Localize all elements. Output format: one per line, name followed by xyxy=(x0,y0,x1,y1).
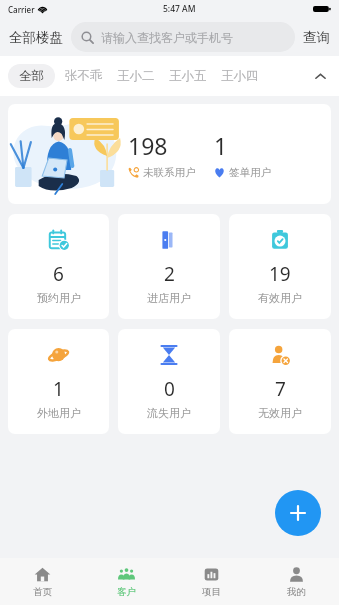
staticText: 王小四 xyxy=(221,68,259,84)
staticText: 198 xyxy=(128,130,168,161)
button[interactable]: 张不乖 xyxy=(61,64,107,88)
staticText: 请输入查找客户或手机号 xyxy=(101,30,233,45)
button[interactable]: 19 xyxy=(229,214,331,319)
staticText: 1 xyxy=(214,130,228,161)
button[interactable]: 6 xyxy=(8,214,109,319)
staticText: 无效用户 xyxy=(258,406,302,420)
button[interactable]: 7 xyxy=(229,329,331,434)
staticText: 我的 xyxy=(287,586,306,598)
staticText: 首页 xyxy=(33,586,52,598)
staticText: 项目 xyxy=(202,586,221,598)
button[interactable]: 我的 xyxy=(254,558,339,605)
button[interactable]: 王小五 xyxy=(165,64,211,88)
staticText: 全部 xyxy=(19,68,44,84)
button[interactable]: Collapse tabs xyxy=(307,63,333,89)
staticText: 签单用户 xyxy=(229,166,271,179)
staticText: 5:47 AM xyxy=(163,3,196,15)
button[interactable]: Add customer xyxy=(275,490,321,536)
button[interactable]: 首页 xyxy=(0,558,84,605)
staticText: Carrier xyxy=(8,4,35,15)
button[interactable]: 0 xyxy=(118,329,220,434)
staticText: 1 xyxy=(53,376,64,402)
staticText: 预约用户 xyxy=(37,291,81,305)
staticText: 王小五 xyxy=(169,68,207,84)
staticText: 客户 xyxy=(117,586,136,598)
staticText: 0 xyxy=(164,376,175,402)
staticText: 外地用户 xyxy=(37,406,81,420)
staticText: 查询 xyxy=(303,29,330,46)
button[interactable]: 查询 xyxy=(302,25,331,50)
button[interactable]: 王小四 xyxy=(217,64,263,88)
staticText: 7 xyxy=(275,376,286,402)
staticText: 王小二 xyxy=(117,68,155,84)
staticText: 有效用户 xyxy=(258,291,302,305)
button[interactable]: 2 xyxy=(118,214,220,319)
staticText: 6 xyxy=(53,261,64,287)
staticText: 张不乖 xyxy=(65,68,103,84)
staticText: 19 xyxy=(269,261,291,287)
button[interactable]: 全部楼盘 xyxy=(8,25,64,50)
staticText: 进店用户 xyxy=(147,291,191,305)
button[interactable]: 198 xyxy=(8,104,331,204)
button[interactable]: 请输入查找客户或手机号 xyxy=(71,22,295,52)
staticText: 未联系用户 xyxy=(143,166,196,179)
staticText: 全部楼盘 xyxy=(9,29,63,46)
staticText: 2 xyxy=(164,261,175,287)
staticText: 流失用户 xyxy=(147,406,191,420)
button[interactable]: 项目 xyxy=(169,558,254,605)
button[interactable]: 全部 xyxy=(8,64,55,88)
button[interactable]: 1 xyxy=(8,329,109,434)
button[interactable]: 王小二 xyxy=(113,64,159,88)
button[interactable]: 客户 xyxy=(84,558,169,605)
